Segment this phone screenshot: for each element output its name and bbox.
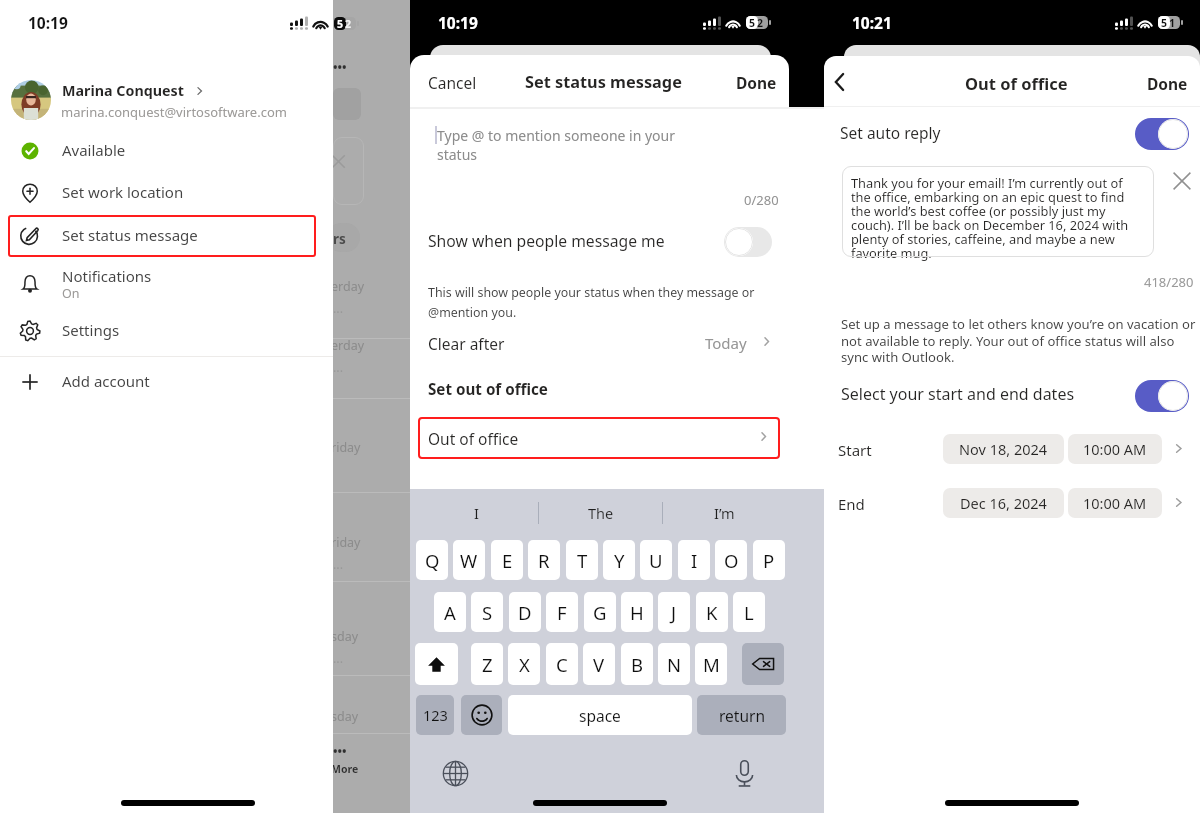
button[interactable]: [0, 361, 333, 403]
staticText: rs: [333, 230, 346, 248]
staticText: Set out of office: [428, 379, 548, 400]
staticText: U: [649, 548, 663, 573]
staticText: •••: [333, 743, 347, 759]
button[interactable]: K: [696, 592, 728, 632]
button[interactable]: Change keyboard: [441, 759, 470, 788]
staticText: couch). I’ll be back on December 16, 202…: [851, 216, 1129, 233]
staticText: Marina Conquest: [62, 81, 184, 100]
staticText: Notifications: [62, 266, 152, 286]
button[interactable]: I: [414, 495, 538, 531]
button[interactable]: J: [658, 592, 690, 632]
staticText: status: [437, 145, 478, 164]
staticText: space: [579, 705, 621, 726]
button[interactable]: [1136, 58, 1200, 106]
button[interactable]: E: [491, 540, 523, 580]
button[interactable]: [0, 215, 333, 257]
staticText: •••: [333, 59, 347, 75]
button[interactable]: N: [658, 643, 690, 685]
button[interactable]: space: [508, 695, 692, 735]
staticText: 1: [1169, 16, 1176, 29]
staticText: erday: [331, 337, 365, 354]
staticText: Cancel: [428, 72, 477, 93]
staticText: F: [557, 600, 567, 625]
staticText: riday: [331, 534, 361, 551]
button[interactable]: [824, 114, 1200, 154]
button[interactable]: Toggle: [1135, 118, 1189, 150]
button[interactable]: Q: [416, 540, 448, 580]
staticText: Dec 16, 2024: [960, 493, 1047, 513]
button[interactable]: A: [434, 592, 466, 632]
button[interactable]: Shift: [415, 643, 458, 685]
button[interactable]: M: [695, 643, 727, 685]
button[interactable]: Backspace: [742, 643, 784, 685]
button[interactable]: [824, 485, 1200, 521]
button[interactable]: [824, 431, 1200, 467]
staticText: 123: [423, 705, 448, 725]
button[interactable]: [410, 225, 824, 261]
staticText: 10:00 AM: [1083, 439, 1147, 459]
staticText: the office, embarking on an epic quest t…: [851, 188, 1125, 205]
button[interactable]: I: [678, 540, 710, 580]
staticText: G: [593, 600, 607, 625]
staticText: sday: [331, 628, 359, 645]
button[interactable]: [410, 328, 824, 360]
button[interactable]: C: [546, 643, 578, 685]
staticText: 2: [757, 16, 764, 29]
staticText: The: [588, 503, 614, 523]
button[interactable]: [410, 58, 502, 106]
button[interactable]: Dictation: [730, 759, 759, 788]
staticText: This will show people your status when t…: [428, 284, 755, 301]
button[interactable]: Y: [603, 540, 635, 580]
button[interactable]: T: [566, 540, 598, 580]
staticText: On: [62, 285, 80, 302]
button[interactable]: H: [621, 592, 653, 632]
button[interactable]: Emoji: [461, 695, 502, 735]
button[interactable]: [0, 172, 333, 214]
button[interactable]: X: [508, 643, 540, 685]
button[interactable]: W: [453, 540, 485, 580]
staticText: Q: [425, 548, 440, 573]
button[interactable]: L: [733, 592, 765, 632]
staticText: I: [691, 548, 698, 573]
staticText: 5: [749, 16, 756, 29]
button[interactable]: V: [583, 643, 615, 685]
button[interactable]: F: [546, 592, 578, 632]
button[interactable]: [0, 263, 333, 305]
button[interactable]: Back: [824, 58, 870, 104]
button[interactable]: [824, 376, 1200, 416]
button[interactable]: Toggle: [1135, 380, 1189, 412]
staticText: Today: [705, 333, 747, 353]
staticText: Settings: [62, 320, 120, 340]
staticText: Type @ to mention someone in your: [437, 126, 676, 145]
button[interactable]: R: [528, 540, 560, 580]
staticText: C: [556, 652, 568, 677]
button[interactable]: [842, 166, 1154, 257]
button[interactable]: U: [640, 540, 672, 580]
button[interactable]: [0, 78, 333, 122]
button[interactable]: [0, 130, 333, 172]
button[interactable]: [0, 310, 333, 352]
button[interactable]: [724, 58, 789, 106]
staticText: 5: [1161, 16, 1168, 29]
button[interactable]: D: [509, 592, 541, 632]
button[interactable]: I’m: [663, 495, 786, 531]
button[interactable]: return: [697, 695, 786, 735]
button[interactable]: 123: [416, 695, 454, 735]
button[interactable]: P: [753, 540, 785, 580]
staticText: Select your start and end dates: [841, 383, 1075, 405]
button[interactable]: O: [715, 540, 747, 580]
button[interactable]: [418, 417, 780, 459]
button[interactable]: S: [471, 592, 503, 632]
staticText: More: [331, 762, 359, 776]
button[interactable]: Z: [471, 643, 503, 685]
button[interactable]: B: [621, 643, 653, 685]
button[interactable]: G: [584, 592, 616, 632]
staticText: 10:21: [852, 12, 892, 33]
staticText: R: [538, 548, 550, 573]
button[interactable]: Clear: [1169, 168, 1194, 193]
button[interactable]: Toggle: [724, 227, 772, 257]
button[interactable]: The: [539, 495, 662, 531]
